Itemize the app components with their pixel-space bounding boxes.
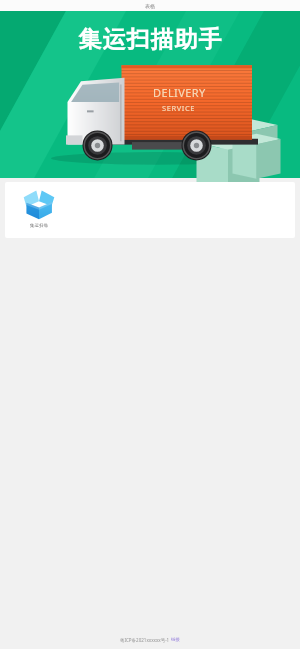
staticText: 粤ICP备2021xxxxxx号-1: [120, 637, 171, 643]
staticText: 集运扫描助手: [78, 25, 222, 54]
staticText: 链接: [171, 637, 180, 643]
staticText: 集运扫描: [30, 223, 48, 229]
button[interactable]: 集运扫描: [17, 187, 61, 229]
staticText: SERVICE: [162, 103, 196, 113]
button[interactable]: 链接: [171, 637, 180, 643]
staticText: 表格: [145, 3, 155, 9]
staticText: DELIVERY: [153, 85, 206, 100]
